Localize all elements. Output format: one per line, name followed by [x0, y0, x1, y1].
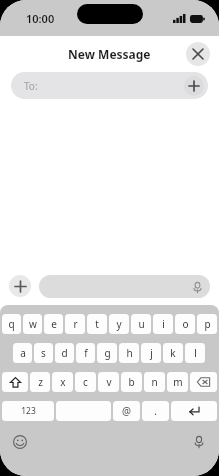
- button[interactable]: Add attachment: [9, 275, 31, 297]
- staticText: s: [41, 346, 46, 360]
- button[interactable]: r: [65, 314, 85, 334]
- button[interactable]: j: [141, 343, 161, 363]
- staticText: g: [104, 346, 111, 360]
- staticText: .: [154, 404, 157, 418]
- button[interactable]: x: [52, 372, 73, 392]
- button[interactable]: c: [75, 372, 96, 392]
- staticText: z: [38, 375, 43, 389]
- button[interactable]: Return: [171, 401, 217, 421]
- button[interactable]: g: [97, 343, 117, 363]
- staticText: 10:00: [26, 11, 55, 26]
- button[interactable]: v: [98, 372, 119, 392]
- button[interactable]: To:: [11, 72, 208, 99]
- button[interactable]: 123: [2, 401, 54, 421]
- button[interactable]: e: [44, 314, 63, 334]
- button[interactable]: h: [119, 343, 139, 363]
- staticText: b: [128, 375, 135, 389]
- staticText: New Message: [68, 46, 151, 62]
- staticText: n: [151, 375, 158, 389]
- staticText: l: [194, 346, 197, 360]
- staticText: 123: [21, 405, 36, 417]
- button[interactable]: Shift: [2, 372, 28, 392]
- button[interactable]: i: [153, 314, 173, 334]
- staticText: h: [126, 346, 133, 360]
- staticText: q: [8, 317, 15, 331]
- button[interactable]: Close: [186, 42, 210, 66]
- button[interactable]: .: [142, 401, 169, 421]
- button[interactable]: m: [167, 372, 188, 392]
- staticText: j: [150, 346, 153, 360]
- button[interactable]: q: [2, 314, 21, 334]
- staticText: d: [61, 346, 68, 360]
- button[interactable]: Voice message: [39, 275, 210, 298]
- button[interactable]: z: [30, 372, 50, 392]
- button[interactable]: u: [131, 314, 151, 334]
- button[interactable]: s: [34, 343, 53, 363]
- staticText: i: [162, 317, 165, 331]
- button[interactable]: k: [163, 343, 183, 363]
- staticText: k: [170, 346, 176, 360]
- staticText: @: [122, 404, 131, 418]
- staticText: m: [173, 375, 183, 389]
- button[interactable]: @: [113, 401, 140, 421]
- button[interactable]: d: [55, 343, 74, 363]
- button[interactable]: l: [185, 343, 205, 363]
- button[interactable]: Add contact: [184, 76, 204, 96]
- staticText: v: [106, 375, 112, 389]
- staticText: f: [84, 346, 88, 360]
- button[interactable]: Dictate: [191, 434, 207, 450]
- button[interactable]: o: [175, 314, 195, 334]
- button[interactable]: f: [76, 343, 95, 363]
- button[interactable]: Voice message: [190, 280, 204, 294]
- staticText: p: [204, 317, 211, 331]
- staticText: t: [95, 317, 99, 331]
- button[interactable]: b: [121, 372, 142, 392]
- staticText: y: [116, 317, 122, 331]
- staticText: x: [60, 375, 66, 389]
- staticText: c: [83, 375, 88, 389]
- button[interactable]: n: [144, 372, 165, 392]
- button[interactable]: t: [87, 314, 107, 334]
- staticText: To:: [24, 79, 38, 93]
- button[interactable]: y: [109, 314, 129, 334]
- button[interactable]: Emoji: [12, 434, 28, 450]
- staticText: u: [138, 317, 145, 331]
- button[interactable]: [56, 401, 111, 421]
- button[interactable]: Backspace: [190, 372, 217, 392]
- button[interactable]: p: [197, 314, 217, 334]
- button[interactable]: w: [23, 314, 42, 334]
- staticText: w: [29, 317, 37, 331]
- staticText: e: [51, 317, 57, 331]
- staticText: r: [73, 317, 78, 331]
- staticText: o: [182, 317, 189, 331]
- staticText: a: [20, 346, 26, 360]
- button[interactable]: a: [13, 343, 32, 363]
